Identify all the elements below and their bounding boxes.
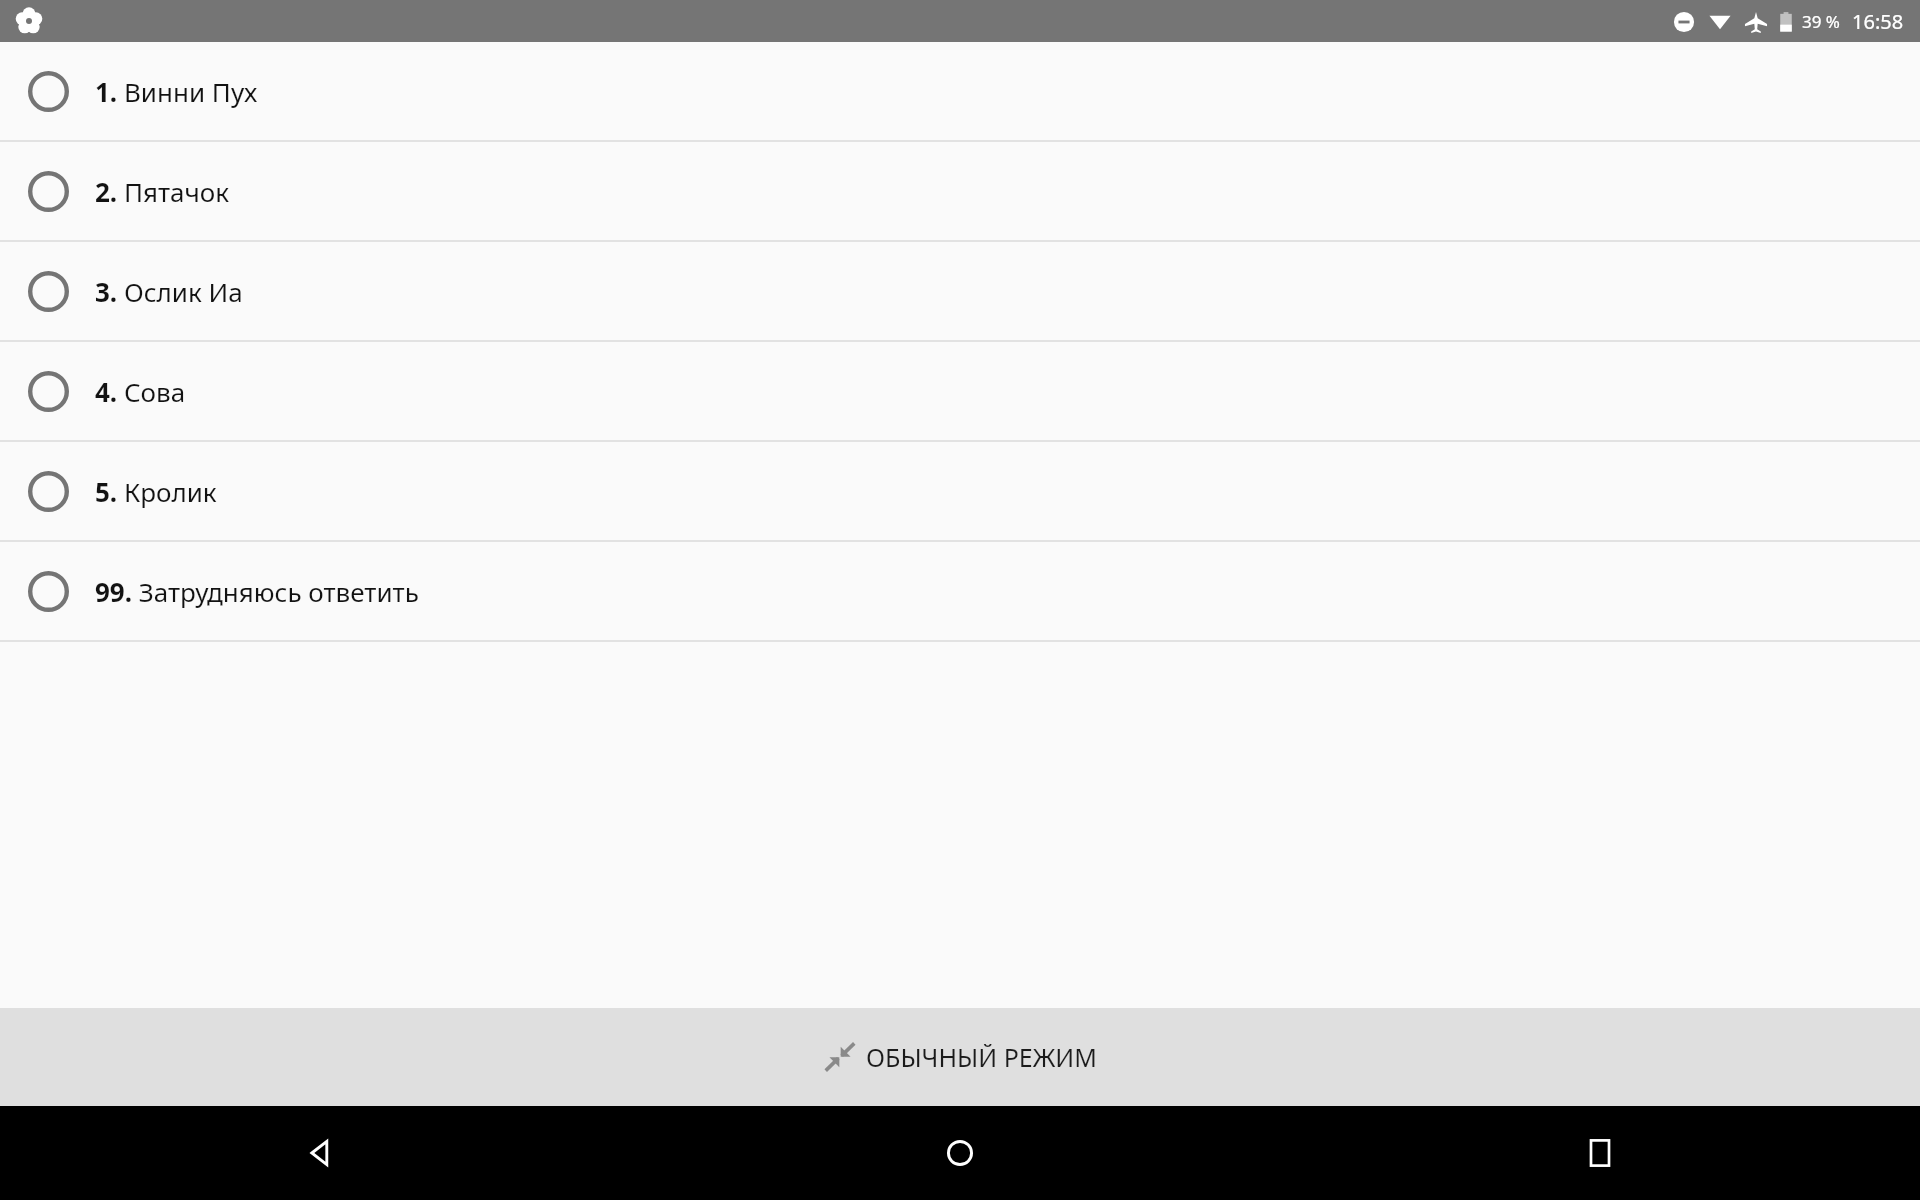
button[interactable]: Back [0,1106,640,1200]
staticText: 39 % [1802,10,1840,33]
staticText: 99. Затрудняюсь ответить [95,574,419,609]
staticText: 1. Винни Пух [95,74,258,109]
button[interactable]: 4. Сова [0,342,1920,440]
button[interactable]: 99. Затрудняюсь ответить [0,542,1920,640]
button[interactable]: Recents [1280,1106,1920,1200]
button[interactable]: Home [640,1106,1280,1200]
staticText: ОБЫЧНЫЙ РЕЖИМ [866,1040,1097,1074]
staticText: 16:58 [1852,8,1904,35]
staticText: 5. Кролик [95,474,217,509]
button[interactable]: 1. Винни Пух [0,42,1920,140]
button[interactable]: 3. Ослик Иа [0,242,1920,340]
staticText: 3. Ослик Иа [95,274,243,309]
button[interactable]: ОБЫЧНЫЙ РЕЖИМ [0,1008,1920,1106]
staticText: 2. Пятачок [95,174,230,209]
button[interactable]: 2. Пятачок [0,142,1920,240]
staticText: 4. Сова [95,374,186,409]
button[interactable]: 5. Кролик [0,442,1920,540]
